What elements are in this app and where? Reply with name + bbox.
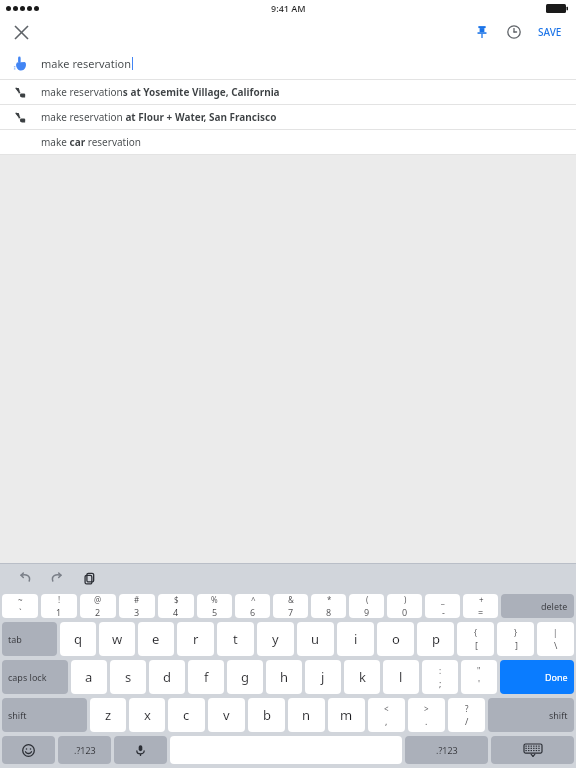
- staticText: [: [475, 639, 478, 651]
- button[interactable]: delete: [501, 594, 574, 618]
- button[interactable]: +: [463, 594, 498, 618]
- staticText: {: [474, 627, 478, 638]
- button[interactable]: y: [257, 622, 294, 656]
- button[interactable]: shift: [488, 698, 574, 732]
- button[interactable]: .?123: [58, 736, 111, 764]
- staticText: make car reservation: [41, 135, 141, 149]
- staticText: tab: [8, 633, 22, 645]
- staticText: #: [134, 594, 140, 605]
- button[interactable]: d: [149, 660, 185, 694]
- button[interactable]: Paste: [76, 565, 102, 591]
- staticText: Done: [545, 671, 568, 683]
- button[interactable]: *: [311, 594, 346, 618]
- staticText: v: [223, 706, 230, 724]
- button[interactable]: Close: [6, 17, 36, 47]
- staticText: ": [477, 665, 481, 676]
- staticText: 9:41 AM: [271, 2, 306, 14]
- button[interactable]: e: [138, 622, 174, 656]
- staticText: k: [359, 668, 366, 686]
- button[interactable]: f: [188, 660, 224, 694]
- button[interactable]: <: [368, 698, 405, 732]
- button[interactable]: }: [497, 622, 534, 656]
- button[interactable]: v: [208, 698, 245, 732]
- button[interactable]: p: [417, 622, 454, 656]
- button[interactable]: o: [377, 622, 414, 656]
- button[interactable]: h: [266, 660, 302, 694]
- button[interactable]: |: [537, 622, 574, 656]
- button[interactable]: make reservations at Yosemite Village, C…: [0, 80, 576, 104]
- button[interactable]: shift: [2, 698, 87, 732]
- button[interactable]: ": [461, 660, 497, 694]
- button[interactable]: #: [119, 594, 155, 618]
- button[interactable]: &: [273, 594, 308, 618]
- staticText: ~: [18, 594, 23, 605]
- button[interactable]: $: [158, 594, 194, 618]
- staticText: f: [204, 668, 209, 686]
- button[interactable]: t: [217, 622, 254, 656]
- button[interactable]: k: [344, 660, 380, 694]
- staticText: (: [366, 594, 369, 605]
- staticText: 3: [134, 606, 140, 618]
- button[interactable]: z: [90, 698, 126, 732]
- button[interactable]: Done: [500, 660, 574, 694]
- staticText: !: [58, 594, 61, 605]
- button[interactable]: ): [387, 594, 422, 618]
- button[interactable]: make reservation: [0, 48, 576, 79]
- button[interactable]: x: [129, 698, 165, 732]
- button[interactable]: >: [408, 698, 445, 732]
- staticText: >: [424, 703, 429, 714]
- staticText: $: [174, 594, 179, 605]
- button[interactable]: q: [60, 622, 96, 656]
- button[interactable]: r: [177, 622, 214, 656]
- button[interactable]: (: [349, 594, 384, 618]
- staticText: @: [94, 594, 102, 605]
- staticText: 7: [288, 606, 294, 618]
- button[interactable]: ~: [2, 594, 38, 618]
- button[interactable]: !: [41, 594, 77, 618]
- staticText: p: [432, 630, 440, 648]
- button[interactable]: ^: [235, 594, 270, 618]
- button[interactable]: Emoji: [2, 736, 55, 764]
- staticText: ): [404, 594, 407, 605]
- button[interactable]: Pin: [468, 18, 496, 46]
- button[interactable]: w: [99, 622, 135, 656]
- button[interactable]: Redo: [44, 565, 70, 591]
- button[interactable]: SAVE: [532, 19, 568, 45]
- button[interactable]: History: [500, 18, 528, 46]
- button[interactable]: l: [383, 660, 419, 694]
- staticText: make reservation at Flour + Water, San F…: [41, 110, 277, 124]
- staticText: .?123: [74, 744, 96, 756]
- staticText: d: [163, 668, 171, 686]
- button[interactable]: caps lock: [2, 660, 68, 694]
- button[interactable]: c: [168, 698, 205, 732]
- button[interactable]: b: [248, 698, 285, 732]
- button[interactable]: s: [110, 660, 146, 694]
- button[interactable]: a: [71, 660, 107, 694]
- button[interactable]: {: [457, 622, 494, 656]
- button[interactable]: tab: [2, 622, 57, 656]
- button[interactable]: Hide keyboard: [491, 736, 574, 764]
- button[interactable]: g: [227, 660, 263, 694]
- button[interactable]: :: [422, 660, 458, 694]
- button[interactable]: ?: [448, 698, 485, 732]
- staticText: _: [441, 594, 445, 605]
- button[interactable]: @: [80, 594, 116, 618]
- button[interactable]: %: [197, 594, 232, 618]
- button[interactable]: j: [305, 660, 341, 694]
- button[interactable]: Undo: [12, 565, 38, 591]
- staticText: -: [442, 606, 445, 618]
- button[interactable]: make car reservation: [0, 130, 576, 154]
- button[interactable]: m: [328, 698, 365, 732]
- button[interactable]: u: [297, 622, 334, 656]
- staticText: a: [85, 668, 93, 686]
- staticText: \: [554, 639, 558, 651]
- button[interactable]: Voice input: [114, 736, 167, 764]
- button[interactable]: n: [288, 698, 325, 732]
- staticText: t: [233, 630, 238, 648]
- button[interactable]: make reservation at Flour + Water, San F…: [0, 105, 576, 129]
- button[interactable]: i: [337, 622, 374, 656]
- button[interactable]: _: [425, 594, 460, 618]
- button[interactable]: .?123: [405, 736, 488, 764]
- staticText: 0: [402, 606, 408, 618]
